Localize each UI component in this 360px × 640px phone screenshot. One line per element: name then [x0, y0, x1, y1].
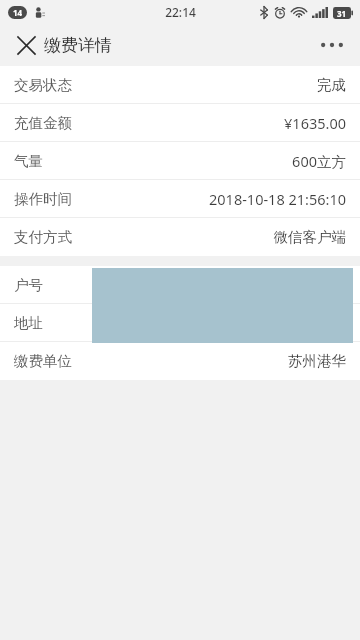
staticText: 气量 [14, 152, 43, 170]
button[interactable]: 支付方式 [0, 218, 360, 256]
staticText: 地址 [14, 314, 43, 332]
staticText: 缴费详情 [44, 35, 112, 56]
staticText: 14 [13, 7, 23, 18]
button[interactable]: 户号 [0, 266, 360, 303]
button[interactable]: 交易状态 [0, 66, 360, 103]
staticText: 微信客户端 [273, 228, 346, 246]
staticText: 31 [337, 8, 347, 19]
staticText: 苏州港华 [288, 352, 346, 370]
button[interactable]: 操作时间 [0, 180, 360, 217]
staticText: 户号 [14, 276, 43, 294]
button[interactable]: 充值金额 [0, 104, 360, 141]
staticText: ¥1635.00 [284, 113, 346, 133]
staticText: 2018-10-18 21:56:10 [209, 189, 346, 209]
staticText: 600立方 [292, 151, 346, 171]
button[interactable]: More options [312, 25, 352, 65]
staticText: 操作时间 [14, 190, 72, 208]
staticText: 22:14 [165, 4, 196, 20]
button[interactable]: 气量 [0, 142, 360, 179]
staticText: 交易状态 [14, 76, 72, 94]
staticText: 支付方式 [14, 228, 72, 246]
staticText: 完成 [317, 76, 346, 94]
staticText: 充值金额 [14, 114, 72, 132]
button[interactable]: 缴费单位 [0, 342, 360, 380]
button[interactable]: 地址 [0, 304, 360, 341]
staticText: 缴费单位 [14, 352, 72, 370]
button[interactable]: Close [8, 27, 44, 63]
